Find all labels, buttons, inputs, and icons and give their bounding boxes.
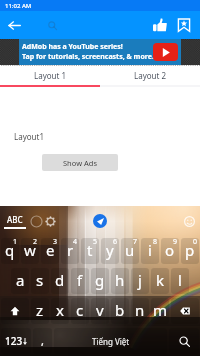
button[interactable]: b xyxy=(111,298,129,324)
staticText: Tap for tutorials, screencasts, & more. xyxy=(22,52,154,62)
button[interactable]: Voice xyxy=(93,214,107,228)
staticText: c xyxy=(76,300,84,320)
button[interactable]: Play video xyxy=(153,43,178,61)
button[interactable]: Search xyxy=(169,328,199,354)
button[interactable]: Back xyxy=(2,13,26,37)
staticText: Show Ads xyxy=(63,158,97,168)
staticText: 5 xyxy=(93,238,98,247)
button[interactable]: m xyxy=(151,298,169,324)
button[interactable]: r xyxy=(61,238,79,264)
button[interactable]: Settings xyxy=(44,215,57,228)
button[interactable]: Tiếng Việt xyxy=(54,328,167,354)
staticText: 11:02 AM xyxy=(5,2,32,10)
button[interactable]: Like xyxy=(148,13,172,37)
button[interactable]: l xyxy=(171,268,189,294)
staticText: e xyxy=(46,240,55,260)
button[interactable]: 123 xyxy=(1,328,31,354)
staticText: w xyxy=(24,240,36,260)
button[interactable]: z xyxy=(31,298,49,324)
staticText: , xyxy=(41,333,44,348)
button[interactable]: q xyxy=(1,238,19,264)
staticText: n xyxy=(135,300,145,320)
button[interactable]: k xyxy=(151,268,169,294)
staticText: k xyxy=(156,270,165,290)
button[interactable]: v xyxy=(91,298,109,324)
staticText: m xyxy=(153,300,168,320)
button[interactable]: AdMob has a YouTube series! xyxy=(19,39,181,65)
staticText: 0 xyxy=(193,238,198,247)
staticText: s xyxy=(36,270,44,290)
button[interactable]: Shift xyxy=(1,298,29,324)
button[interactable]: c xyxy=(71,298,89,324)
staticText: d xyxy=(55,270,65,290)
button[interactable]: t xyxy=(81,238,99,264)
staticText: Layout 2 xyxy=(134,70,167,81)
staticText: Layout 1 xyxy=(34,70,67,81)
button[interactable]: h xyxy=(111,268,129,294)
staticText: 9 xyxy=(173,238,178,247)
staticText: v xyxy=(96,300,104,320)
staticText: x xyxy=(56,300,64,320)
staticText: r xyxy=(67,240,74,260)
button[interactable]: Bookmark xyxy=(172,13,196,37)
button[interactable]: e xyxy=(41,238,59,264)
button[interactable]: p xyxy=(181,238,199,264)
staticText: Tiếng Việt xyxy=(92,336,130,347)
staticText: i xyxy=(148,240,152,260)
button[interactable]: Theme xyxy=(30,215,43,228)
button[interactable]: Search xyxy=(40,13,64,37)
button[interactable]: w xyxy=(21,238,39,264)
staticText: t xyxy=(87,240,93,260)
button[interactable]: a xyxy=(11,268,29,294)
staticText: p xyxy=(185,240,195,260)
staticText: h xyxy=(115,270,125,290)
staticText: 123 xyxy=(5,334,23,348)
staticText: u xyxy=(125,240,135,260)
button[interactable]: o xyxy=(161,238,179,264)
staticText: 1 xyxy=(13,238,18,247)
staticText: 8 xyxy=(153,238,158,247)
staticText: 4 xyxy=(73,238,78,247)
button[interactable]: x xyxy=(51,298,69,324)
button[interactable]: j xyxy=(131,268,149,294)
button[interactable]: n xyxy=(131,298,149,324)
staticText: f xyxy=(77,270,83,290)
staticText: Layout1 xyxy=(14,131,45,142)
staticText: AdMob has a YouTube series! xyxy=(22,42,123,52)
button[interactable]: u xyxy=(121,238,139,264)
staticText: 7 xyxy=(133,238,138,247)
staticText: g xyxy=(95,270,105,290)
button[interactable]: , xyxy=(33,328,52,354)
button[interactable]: i xyxy=(141,238,159,264)
button[interactable]: ABC xyxy=(4,214,26,229)
staticText: ABC xyxy=(7,214,23,225)
button[interactable]: Layout 1 xyxy=(0,65,100,85)
button[interactable]: s xyxy=(31,268,49,294)
staticText: a xyxy=(16,270,25,290)
button[interactable]: Backspace xyxy=(171,298,199,324)
button[interactable]: Emoji xyxy=(183,215,196,228)
staticText: j xyxy=(138,270,142,290)
staticText: l xyxy=(178,270,182,290)
button[interactable]: Show Ads xyxy=(42,154,118,171)
staticText: 2 xyxy=(33,238,38,247)
button[interactable]: Layout 2 xyxy=(100,65,200,85)
button[interactable]: y xyxy=(101,238,119,264)
button[interactable]: g xyxy=(91,268,109,294)
button[interactable]: d xyxy=(51,268,69,294)
staticText: b xyxy=(115,300,125,320)
staticText: q xyxy=(5,240,15,260)
staticText: o xyxy=(165,240,175,260)
staticText: y xyxy=(106,240,114,260)
staticText: 6 xyxy=(113,238,118,247)
staticText: 3 xyxy=(53,238,58,247)
button[interactable]: f xyxy=(71,268,89,294)
staticText: z xyxy=(36,300,44,320)
